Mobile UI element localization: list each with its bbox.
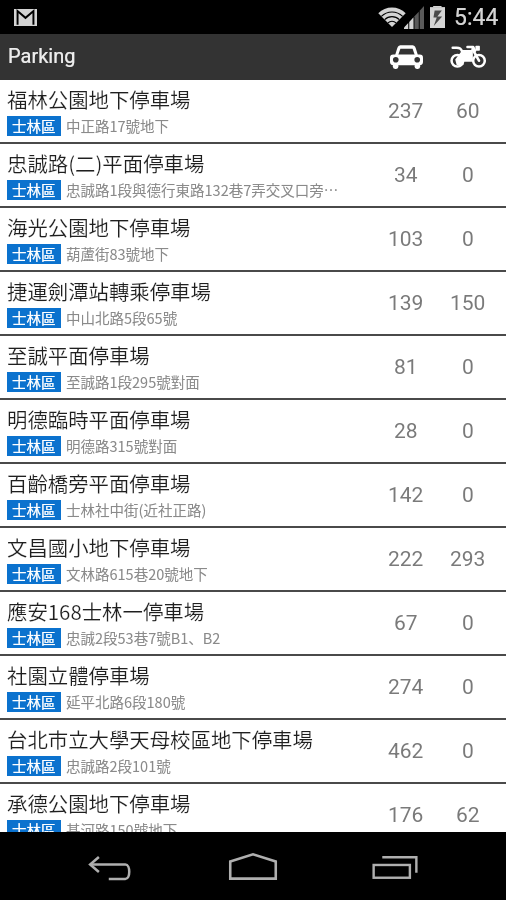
staticText: 0 <box>462 355 474 380</box>
staticText: 士林區 <box>12 372 56 392</box>
staticText: 士林區 <box>12 244 56 264</box>
button[interactable]: Back <box>50 832 175 900</box>
staticText: 0 <box>462 163 474 188</box>
staticText: 文林路615巷20號地下 <box>66 563 208 584</box>
button[interactable]: 海光公園地下停車場 <box>0 208 506 272</box>
staticText: 承德公園地下停車場 <box>7 788 191 818</box>
staticText: 237 <box>388 99 424 124</box>
button[interactable]: 至誠平面停車場 <box>0 336 506 400</box>
staticText: 士林區 <box>12 436 56 456</box>
staticText: 60 <box>456 99 480 124</box>
staticText: 士林區 <box>12 756 56 776</box>
staticText: 士林社中街(近社正路) <box>66 499 207 520</box>
staticText: 0 <box>462 675 474 700</box>
staticText: 62 <box>456 803 480 828</box>
staticText: 社園立體停車場 <box>7 660 150 690</box>
staticText: 延平北路6段180號 <box>66 691 186 712</box>
staticText: 士林區 <box>12 628 56 648</box>
staticText: 81 <box>394 355 418 380</box>
staticText: 忠誠路1段與德行東路132巷7弄交叉口旁… <box>66 179 339 200</box>
staticText: 忠誠路2段101號 <box>66 755 171 776</box>
staticText: 葫蘆街83號地下 <box>66 243 170 264</box>
staticText: 士林區 <box>12 820 56 840</box>
staticText: 139 <box>388 291 424 316</box>
staticText: 0 <box>462 227 474 252</box>
staticText: 176 <box>388 803 424 828</box>
staticText: 士林區 <box>12 500 56 520</box>
button[interactable]: 社園立體停車場 <box>0 656 506 720</box>
staticText: 中山北路5段65號 <box>66 307 178 328</box>
staticText: 0 <box>462 611 474 636</box>
staticText: 至誠路1段295號對面 <box>66 371 200 392</box>
button[interactable]: 百齡橋旁平面停車場 <box>0 464 506 528</box>
staticText: 5:44 <box>454 4 499 31</box>
staticText: 文昌國小地下停車場 <box>7 532 191 562</box>
staticText: 0 <box>462 483 474 508</box>
staticText: 明德路315號對面 <box>66 435 178 456</box>
button[interactable]: 明德臨時平面停車場 <box>0 400 506 464</box>
staticText: 0 <box>462 419 474 444</box>
button[interactable]: 文昌國小地下停車場 <box>0 528 506 592</box>
staticText: 士林區 <box>12 116 56 136</box>
button[interactable]: Motorcycle parking <box>437 34 499 80</box>
staticText: 忠誠路(二)平面停車場 <box>7 148 205 178</box>
staticText: 士林區 <box>12 564 56 584</box>
staticText: 462 <box>388 739 424 764</box>
staticText: 台北市立大學天母校區地下停車場 <box>7 724 313 754</box>
button[interactable]: 承德公園地下停車場 <box>0 784 506 848</box>
staticText: 至誠平面停車場 <box>7 340 150 370</box>
staticText: Parking <box>8 44 76 67</box>
staticText: 293 <box>450 547 486 572</box>
staticText: 福林公園地下停車場 <box>7 84 191 114</box>
staticText: 274 <box>388 675 424 700</box>
staticText: 明德臨時平面停車場 <box>7 404 191 434</box>
button[interactable]: 忠誠路(二)平面停車場 <box>0 144 506 208</box>
staticText: 28 <box>394 419 418 444</box>
staticText: 忠誠2段53巷7號B1、B2 <box>66 627 221 648</box>
staticText: 基河路150號地下 <box>66 819 178 840</box>
staticText: 67 <box>394 611 418 636</box>
button[interactable]: Car parking <box>375 34 437 80</box>
staticText: 103 <box>388 227 424 252</box>
staticText: 士林區 <box>12 692 56 712</box>
staticText: 士林區 <box>12 308 56 328</box>
button[interactable]: Home <box>190 832 315 900</box>
staticText: 百齡橋旁平面停車場 <box>7 468 191 498</box>
button[interactable]: Recent apps <box>333 832 458 900</box>
button[interactable]: 台北市立大學天母校區地下停車場 <box>0 720 506 784</box>
staticText: 海光公園地下停車場 <box>7 212 191 242</box>
staticText: 應安168士林一停車場 <box>7 596 205 626</box>
staticText: 150 <box>450 291 486 316</box>
button[interactable]: 福林公園地下停車場 <box>0 80 506 144</box>
staticText: 0 <box>462 739 474 764</box>
button[interactable]: 應安168士林一停車場 <box>0 592 506 656</box>
staticText: 捷運劍潭站轉乘停車場 <box>7 276 211 306</box>
button[interactable]: 捷運劍潭站轉乘停車場 <box>0 272 506 336</box>
staticText: 142 <box>388 483 424 508</box>
staticText: 34 <box>394 163 418 188</box>
staticText: 士林區 <box>12 180 56 200</box>
staticText: 中正路17號地下 <box>66 115 170 136</box>
staticText: 222 <box>388 547 424 572</box>
